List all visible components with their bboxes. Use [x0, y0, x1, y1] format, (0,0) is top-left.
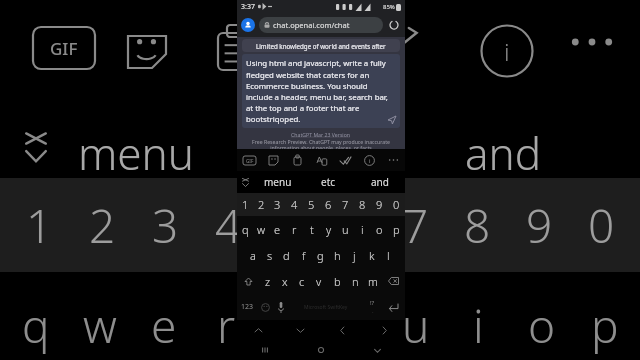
- button[interactable]: Move up: [237, 320, 279, 340]
- button[interactable]: g: [312, 242, 329, 268]
- button[interactable]: Back: [349, 340, 405, 360]
- staticText: 85%: [383, 3, 395, 11]
- button[interactable]: Expand suggestions: [237, 171, 253, 193]
- button[interactable]: f: [295, 242, 312, 268]
- button[interactable]: x: [276, 268, 293, 294]
- staticText: p: [591, 294, 619, 357]
- button[interactable]: y: [320, 216, 337, 242]
- button[interactable]: q: [237, 216, 253, 242]
- staticText: 2: [258, 197, 265, 212]
- staticText: p: [393, 222, 400, 237]
- staticText: e: [151, 294, 177, 357]
- button[interactable]: d: [278, 242, 295, 268]
- button[interactable]: u: [337, 216, 354, 242]
- button[interactable]: etc: [303, 171, 354, 193]
- button[interactable]: 123: [237, 294, 257, 320]
- button[interactable]: Info: [357, 149, 381, 171]
- staticText: 5: [308, 197, 315, 212]
- button[interactable]: z: [259, 268, 276, 294]
- button[interactable]: Punctuation: [363, 294, 382, 320]
- staticText: 6: [325, 197, 332, 212]
- staticText: 2: [89, 194, 116, 257]
- button[interactable]: v: [310, 268, 328, 294]
- button[interactable]: 3: [269, 193, 286, 216]
- button[interactable]: r: [286, 216, 303, 242]
- button[interactable]: menu: [253, 171, 303, 193]
- button[interactable]: Account: [241, 18, 255, 32]
- staticText: o: [376, 222, 383, 237]
- staticText: i: [369, 157, 371, 165]
- button[interactable]: o: [371, 216, 388, 242]
- staticText: o: [528, 294, 556, 357]
- button[interactable]: e: [269, 216, 286, 242]
- button[interactable]: Microsoft SwiftKey: [289, 294, 363, 320]
- staticText: n: [352, 274, 359, 289]
- staticText: and: [465, 123, 542, 183]
- staticText: a: [250, 248, 256, 263]
- button[interactable]: c: [293, 268, 310, 294]
- button[interactable]: Move down: [279, 320, 321, 340]
- button[interactable]: 0: [388, 193, 405, 216]
- button[interactable]: Stickers: [261, 149, 285, 171]
- staticText: 3: [274, 197, 281, 212]
- staticText: etc: [321, 175, 336, 189]
- button[interactable]: Shift: [237, 268, 259, 294]
- button[interactable]: and: [354, 171, 405, 193]
- button[interactable]: More: [381, 149, 405, 171]
- button[interactable]: 8: [354, 193, 371, 216]
- button[interactable]: Backspace: [382, 268, 405, 294]
- button[interactable]: 4: [286, 193, 303, 216]
- staticText: menu: [78, 123, 194, 183]
- button[interactable]: Clipboard: [285, 149, 309, 171]
- staticText: i: [504, 35, 510, 68]
- button[interactable]: s: [261, 242, 278, 268]
- button[interactable]: Enter: [382, 294, 405, 320]
- staticText: 6: [340, 194, 367, 257]
- staticText: Limited knowledge of world and events af…: [256, 42, 386, 50]
- button[interactable]: 5: [303, 193, 320, 216]
- button[interactable]: Spell check: [333, 149, 357, 171]
- button[interactable]: Reload: [387, 18, 401, 32]
- staticText: t: [310, 222, 314, 237]
- staticText: 7: [342, 197, 349, 212]
- staticText: .: [372, 307, 374, 315]
- button[interactable]: Move left: [321, 320, 363, 340]
- button[interactable]: n: [346, 268, 364, 294]
- staticText: Free Research Preview. ChatGPT may produ…: [252, 138, 390, 149]
- staticText: 3:37: [241, 2, 255, 12]
- button[interactable]: Translate: [309, 149, 333, 171]
- button[interactable]: 6: [320, 193, 337, 216]
- button[interactable]: k: [363, 242, 380, 268]
- button[interactable]: 2: [253, 193, 269, 216]
- button[interactable]: Recent apps: [237, 340, 293, 360]
- button[interactable]: Using html and javascript, write a fully…: [242, 54, 400, 128]
- button[interactable]: Move right: [363, 320, 405, 340]
- button[interactable]: t: [303, 216, 320, 242]
- button[interactable]: 7: [337, 193, 354, 216]
- button[interactable]: m: [364, 268, 382, 294]
- staticText: r: [217, 294, 236, 357]
- button[interactable]: h: [329, 242, 346, 268]
- button[interactable]: b: [328, 268, 346, 294]
- button[interactable]: i: [354, 216, 371, 242]
- button[interactable]: Limited knowledge of world and events af…: [242, 39, 400, 52]
- staticText: menu: [264, 175, 292, 189]
- staticText: Microsoft SwiftKey: [304, 304, 348, 311]
- staticText: 8: [464, 194, 491, 257]
- button[interactable]: p: [388, 216, 405, 242]
- button[interactable]: w: [253, 216, 269, 242]
- button[interactable]: j: [346, 242, 363, 268]
- button[interactable]: l: [380, 242, 397, 268]
- button[interactable]: Voice input: [273, 294, 289, 320]
- button[interactable]: Home: [293, 340, 349, 360]
- button[interactable]: 9: [371, 193, 388, 216]
- staticText: 0: [588, 194, 615, 257]
- button[interactable]: Emoji: [257, 294, 273, 320]
- button[interactable]: chat.openai.com/chat: [259, 17, 383, 33]
- button[interactable]: 1: [237, 193, 253, 216]
- staticText: 9: [376, 197, 383, 212]
- button[interactable]: a: [244, 242, 261, 268]
- button[interactable]: GIF: [237, 149, 261, 171]
- staticText: v: [316, 274, 322, 289]
- button[interactable]: Send: [387, 115, 396, 124]
